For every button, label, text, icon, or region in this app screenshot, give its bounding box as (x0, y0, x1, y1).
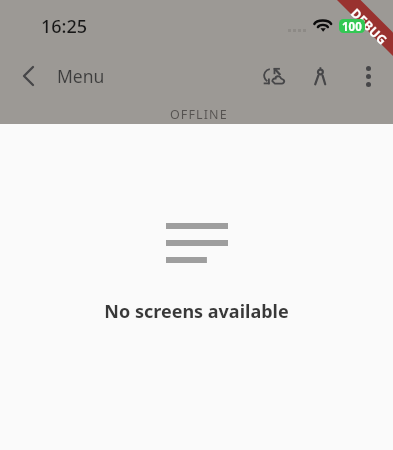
staticText: OFFLINE (170, 106, 228, 123)
button[interactable]: Sync to cloud (247, 52, 295, 100)
button[interactable]: More options (343, 52, 391, 100)
button[interactable]: Measure (295, 52, 343, 100)
staticText: No screens available (104, 299, 289, 324)
button[interactable]: Back (0, 52, 48, 100)
staticText: Menu (57, 64, 105, 88)
staticText: DEBUG (348, 5, 391, 48)
staticText: 100 (342, 19, 362, 33)
staticText: 16:25 (41, 14, 88, 39)
